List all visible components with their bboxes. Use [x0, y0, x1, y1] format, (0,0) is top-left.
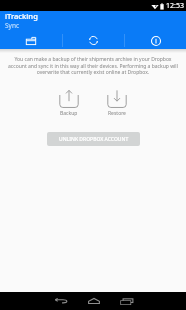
- button[interactable]: Info: [125, 34, 186, 47]
- staticText: UNLINK DROPBOX ACCOUNT: [59, 136, 129, 143]
- button[interactable]: Back: [51, 292, 70, 310]
- button[interactable]: Recents: [117, 292, 136, 310]
- button[interactable]: Restore: [107, 90, 127, 117]
- staticText: Backup: [60, 110, 78, 117]
- staticText: iTracking: [5, 11, 38, 21]
- button[interactable]: UNLINK DROPBOX ACCOUNT: [47, 132, 140, 146]
- staticText: 12:53: [166, 1, 184, 11]
- button[interactable]: Home: [84, 292, 103, 310]
- staticText: You can make a backup of their shipments…: [6, 56, 180, 75]
- staticText: Sync: [5, 21, 20, 30]
- staticText: Restore: [108, 110, 126, 117]
- button[interactable]: Sync: [63, 34, 124, 47]
- button[interactable]: Archive: [0, 34, 62, 47]
- button[interactable]: Backup: [59, 90, 79, 117]
